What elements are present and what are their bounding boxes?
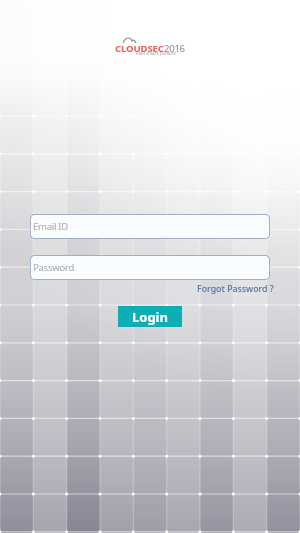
staticText: Email ID [33, 220, 69, 233]
button[interactable]: Password [30, 255, 270, 280]
button[interactable]: Login [118, 306, 182, 327]
staticText: Login [132, 308, 168, 326]
button[interactable]: Email ID [30, 214, 270, 239]
staticText: 2016 [164, 42, 185, 55]
staticText: Forgot Password ? [197, 283, 274, 295]
staticText: HAVE A SAFE JOURNEY [136, 52, 177, 56]
button[interactable]: Forgot Password ? [197, 281, 274, 297]
staticText: CLOUDSEC [115, 42, 164, 55]
staticText: Password [33, 261, 74, 274]
